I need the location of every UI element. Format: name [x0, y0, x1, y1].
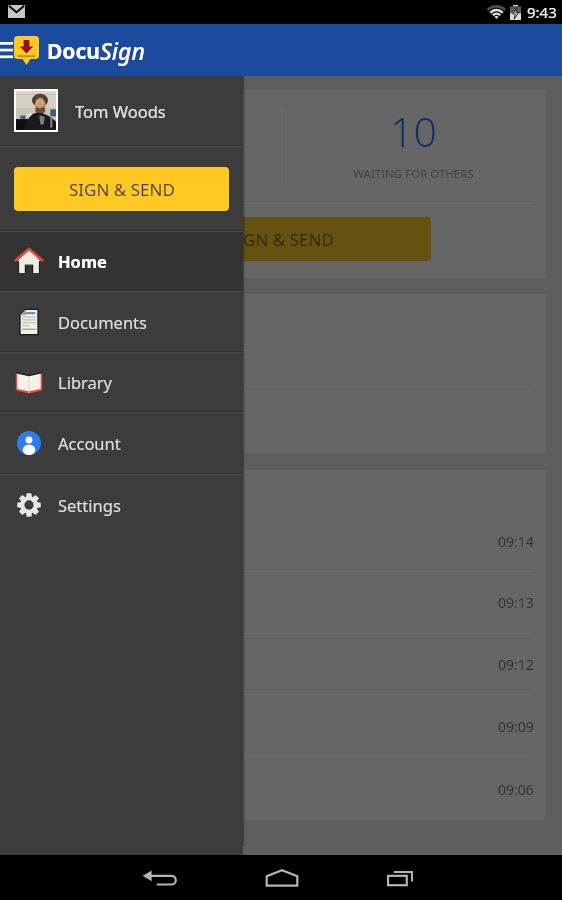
staticText: Documents — [58, 311, 147, 333]
button[interactable]: Home — [0, 232, 243, 290]
button[interactable]: Back — [100, 855, 221, 900]
button[interactable]: Documents — [0, 292, 243, 351]
staticText: NEED TO SIGN — [109, 166, 188, 182]
button[interactable]: 09:14 — [16, 511, 546, 571]
staticText: 9:43 — [527, 2, 557, 22]
button[interactable]: Settings — [0, 475, 243, 535]
staticText: 7 — [137, 103, 161, 159]
button[interactable]: 09:13 — [16, 572, 546, 633]
button[interactable]: 09:09 — [16, 695, 546, 757]
staticText: 09:06 — [498, 780, 534, 799]
button[interactable]: SIGN & SEND — [14, 167, 229, 211]
staticText: Home — [58, 250, 107, 272]
staticText: SIGN & SEND — [69, 178, 175, 201]
staticText: 10 — [390, 103, 437, 159]
button[interactable]: Tom Woods — [0, 76, 243, 145]
button[interactable]: SIGN & SEND — [131, 217, 431, 261]
staticText: Docu — [47, 37, 100, 66]
staticText: Library — [58, 371, 113, 393]
staticText: WAITING FOR OTHERS — [353, 166, 474, 182]
staticText: SIGN & SEND — [228, 228, 334, 251]
button[interactable]: Home — [221, 855, 342, 900]
staticText: 09:14 — [498, 532, 534, 551]
staticText: Settings — [58, 494, 121, 516]
button[interactable]: Library — [0, 353, 243, 411]
button[interactable]: 09:06 — [16, 758, 546, 820]
staticText: Sign — [100, 35, 145, 66]
staticText: 09:09 — [498, 717, 534, 736]
button[interactable]: Recent apps — [342, 855, 463, 900]
staticText: 09:13 — [498, 593, 534, 612]
staticText: 09:12 — [498, 655, 534, 674]
staticText: Tom Woods — [75, 100, 166, 122]
button[interactable]: Open navigation drawer — [0, 24, 22, 76]
staticText: Account — [58, 432, 121, 454]
button[interactable]: 09:12 — [16, 634, 546, 694]
button[interactable]: Account — [0, 413, 243, 473]
